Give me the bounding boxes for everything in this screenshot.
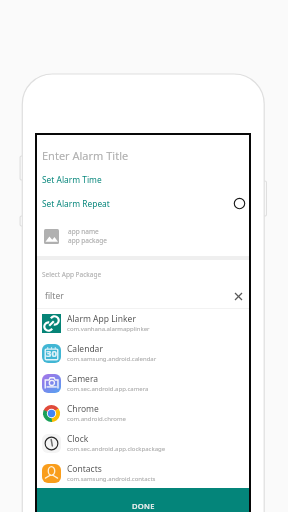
- staticText: Enter Alarm Title: [42, 148, 129, 163]
- staticText: Chrome: [67, 403, 99, 415]
- button[interactable]: Set Alarm Time: [42, 168, 251, 191]
- staticText: 30: [46, 347, 57, 360]
- staticText: com.vanhana.alarmapplinker: [67, 325, 150, 333]
- staticText: app package: [68, 236, 107, 245]
- staticText: com.samsung.android.calendar: [67, 355, 157, 363]
- staticText: Calendar: [67, 343, 103, 355]
- staticText: DONE: [132, 501, 155, 511]
- button[interactable]: DONE: [35, 488, 251, 512]
- staticText: Set Alarm Time: [42, 174, 102, 185]
- button[interactable]: Chrome: [42, 398, 251, 428]
- staticText: Clock: [67, 433, 89, 445]
- staticText: Set Alarm Repeat: [42, 198, 110, 209]
- button[interactable]: Set Alarm Repeat: [42, 192, 245, 215]
- staticText: com.sec.android.app.clockpackage: [67, 445, 166, 453]
- button[interactable]: Camera: [42, 368, 251, 398]
- button[interactable]: Clock: [42, 428, 251, 458]
- button[interactable]: Contacts: [42, 458, 251, 488]
- staticText: Alarm App Linker: [67, 313, 136, 325]
- staticText: Camera: [67, 373, 98, 385]
- button[interactable]: 30: [42, 338, 251, 368]
- button[interactable]: Enter Alarm Title: [42, 142, 251, 168]
- staticText: filter: [45, 290, 64, 302]
- staticText: Contacts: [67, 463, 102, 475]
- button[interactable]: Alarm App Linker: [42, 308, 251, 338]
- staticText: com.samsung.android.contacts: [67, 475, 156, 483]
- staticText: app name: [68, 227, 99, 236]
- staticText: com.android.chrome: [67, 415, 126, 423]
- button[interactable]: Clear filter: [231, 289, 245, 303]
- button[interactable]: app name: [44, 225, 251, 247]
- staticText: com.sec.android.app.camera: [67, 385, 149, 393]
- staticText: Select App Package: [42, 270, 102, 279]
